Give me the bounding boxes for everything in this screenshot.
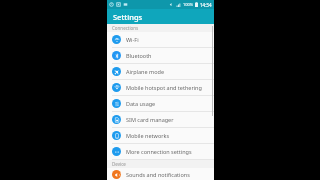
staticText: Settings	[113, 12, 143, 22]
staticText: Device	[112, 161, 126, 167]
button[interactable]: SIM card manager	[107, 112, 214, 128]
button[interactable]: Mobile hotspot and tethering	[107, 80, 214, 96]
button[interactable]: Sounds and notifications	[107, 168, 214, 180]
button[interactable]: Bluetooth	[107, 48, 214, 64]
staticText: Bluetooth	[126, 52, 152, 59]
staticText: Connections	[112, 25, 139, 31]
staticText: More connection settings	[126, 148, 192, 155]
button[interactable]: Airplane mode	[107, 64, 214, 80]
button[interactable]: More connection settings	[107, 144, 214, 160]
staticText: Wi-Fi	[126, 36, 139, 43]
staticText: 14:34	[200, 2, 212, 8]
button[interactable]: Wi-Fi	[107, 32, 214, 48]
staticText: SIM card manager	[126, 116, 174, 123]
button[interactable]: Settings	[107, 9, 214, 24]
staticText: Airplane mode	[126, 68, 164, 75]
staticText: Sounds and notifications	[126, 171, 190, 178]
button[interactable]: Data usage	[107, 96, 214, 112]
staticText: 100%	[183, 2, 194, 7]
button[interactable]: Mobile networks	[107, 128, 214, 144]
staticText: Data usage	[126, 100, 156, 107]
staticText: Mobile networks	[126, 132, 170, 139]
staticText: Mobile hotspot and tethering	[126, 84, 202, 91]
